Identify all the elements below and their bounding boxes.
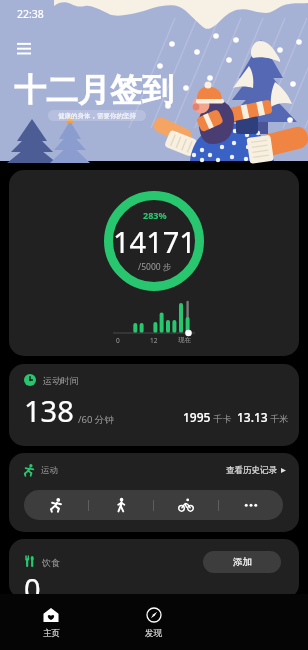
button[interactable]: Cycling bbox=[154, 490, 218, 520]
staticText: 运动时间 bbox=[43, 375, 79, 386]
button[interactable]: 发现 bbox=[102, 594, 205, 650]
staticText: 22:38 bbox=[17, 7, 44, 21]
button[interactable]: 运动时间 bbox=[9, 364, 299, 446]
staticText: 查看历史记录 bbox=[226, 465, 277, 476]
button[interactable]: More bbox=[219, 490, 283, 520]
staticText: 1995 bbox=[183, 409, 211, 425]
staticText: 12 bbox=[150, 336, 158, 345]
button[interactable]: Running bbox=[24, 490, 88, 520]
staticText: 千卡 bbox=[211, 412, 232, 424]
staticText: 0 bbox=[24, 569, 41, 599]
button[interactable]: Menu bbox=[16, 41, 32, 57]
staticText: 发现 bbox=[145, 628, 162, 639]
staticText: 138 bbox=[24, 391, 74, 430]
staticText: 现在 bbox=[178, 336, 191, 344]
staticText: 健康的身体，需要你的坚持 bbox=[58, 112, 136, 120]
button[interactable]: 主页 bbox=[0, 594, 102, 650]
button[interactable]: 283% bbox=[9, 170, 299, 356]
staticText: 14171 bbox=[113, 222, 196, 261]
staticText: /5000 步 bbox=[138, 261, 172, 273]
staticText: 0 bbox=[116, 336, 120, 345]
staticText: 千米 bbox=[268, 412, 289, 424]
staticText: 283% bbox=[143, 209, 167, 221]
staticText: 添加 bbox=[233, 556, 252, 568]
staticText: /60 分钟 bbox=[78, 413, 114, 426]
button[interactable]: 查看历史记录 bbox=[226, 465, 286, 476]
staticText: 运动 bbox=[41, 465, 58, 476]
staticText: 十二月签到 bbox=[14, 70, 174, 110]
button[interactable]: Walking bbox=[89, 490, 153, 520]
staticText: 饮食 bbox=[42, 557, 60, 568]
button[interactable]: 添加 bbox=[203, 551, 281, 573]
staticText: 13.13 bbox=[237, 409, 268, 425]
staticText: 主页 bbox=[43, 628, 60, 639]
